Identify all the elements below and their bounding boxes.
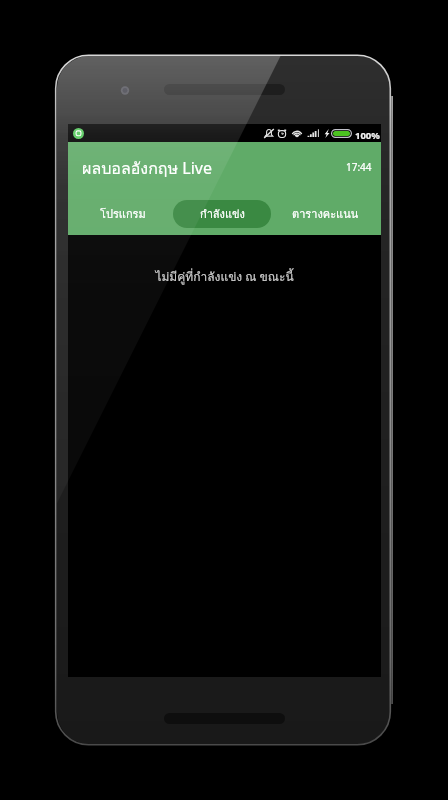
staticText: ตารางคะแนน [292, 205, 359, 222]
button[interactable]: กำลังแข่ง [173, 200, 271, 228]
staticText: กำลังแข่ง [200, 205, 245, 222]
staticText: ผลบอลอังกฤษ Live [82, 156, 212, 181]
staticText: 17:44 [346, 160, 372, 174]
button[interactable]: ตารางคะแนน [280, 200, 370, 228]
other: Notification [73, 128, 84, 139]
button[interactable]: โปรแกรม [78, 200, 168, 228]
staticText: โปรแกรม [100, 205, 146, 222]
staticText: 100% [355, 129, 380, 142]
staticText: ไม่มีคู่ที่กำลังแข่ง ณ ขณะนี้ [68, 267, 381, 286]
